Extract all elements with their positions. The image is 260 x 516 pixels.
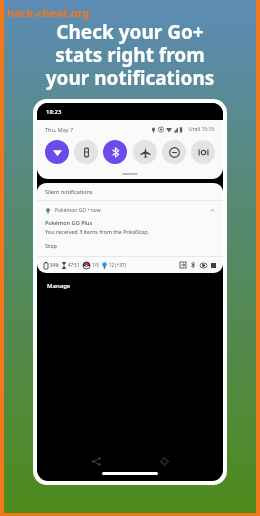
button[interactable]: Quick setting toggle — [133, 140, 157, 164]
staticText: 12 (+37) — [109, 262, 126, 268]
staticText: Manage — [47, 282, 71, 290]
button[interactable]: Screenshot — [156, 453, 172, 469]
staticText: 94% — [50, 262, 59, 268]
staticText: hack-cheat.org — [7, 5, 90, 20]
button[interactable]: Pokémon GO • now — [37, 201, 223, 256]
button[interactable]: Stop — [45, 242, 57, 249]
button[interactable]: Quick setting toggle — [191, 140, 215, 164]
staticText: 1/5 — [92, 262, 99, 268]
staticText: Check your Go+ stats right from your not… — [8, 19, 252, 91]
staticText: You received 3 items from the PokéStop. — [45, 228, 150, 235]
button[interactable]: Quick setting toggle — [74, 140, 98, 164]
staticText: 47:51 — [68, 262, 80, 268]
staticText: Stop — [45, 242, 57, 249]
button[interactable]: Quick setting toggle — [162, 140, 186, 164]
staticText: Silent notifications — [45, 188, 93, 195]
staticText: Until 15:15 — [189, 126, 215, 133]
staticText: Thu, May 7 — [45, 126, 74, 133]
button[interactable]: Quick setting toggle — [45, 140, 69, 164]
staticText: 18:23 — [46, 108, 62, 116]
button[interactable]: Quick setting toggle — [103, 140, 127, 164]
staticText: Pokémon GO Plus — [45, 219, 93, 226]
button[interactable]: Share — [88, 453, 104, 469]
staticText: Pokémon GO • now — [55, 207, 101, 214]
